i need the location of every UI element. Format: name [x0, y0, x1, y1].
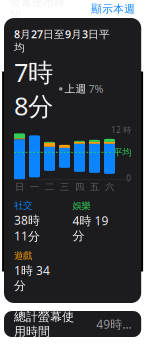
staticText: 總計螢幕使用時間 — [14, 309, 74, 339]
staticText: 上週 — [64, 82, 86, 95]
staticText: 一 — [30, 181, 39, 193]
staticText: 三 — [60, 181, 69, 193]
staticText: 8月27日至9月3日平均 — [14, 27, 110, 54]
staticText: 六 — [105, 181, 114, 193]
staticText: 娛樂 — [73, 200, 91, 212]
staticText: 四 — [75, 181, 84, 193]
staticText: 12 時 — [111, 125, 131, 135]
staticText: 49時… — [96, 316, 131, 332]
staticText: 二 — [45, 181, 54, 193]
staticText: 38時 11分 — [14, 212, 40, 244]
staticText: 日 — [15, 181, 24, 193]
button[interactable]: 顯示本週 — [91, 2, 135, 15]
staticText: 五 — [90, 181, 99, 193]
staticText: 顯示本週 — [91, 2, 135, 15]
staticText: 社交 — [14, 200, 32, 211]
staticText: 7時8分 — [14, 55, 53, 123]
staticText: 4時 19分 — [73, 213, 109, 243]
staticText: 平均 — [113, 147, 131, 158]
staticText: 螢幕使用時間 — [10, 0, 65, 22]
staticText: 1時 34分 — [14, 262, 50, 293]
staticText: 遊戲 — [14, 250, 32, 261]
staticText: 7% — [88, 82, 103, 96]
button[interactable]: 總計螢幕使用時間 — [4, 311, 141, 337]
button[interactable]: 8月27日至9月3日平均 — [4, 18, 141, 303]
staticText: 0 — [126, 173, 131, 183]
